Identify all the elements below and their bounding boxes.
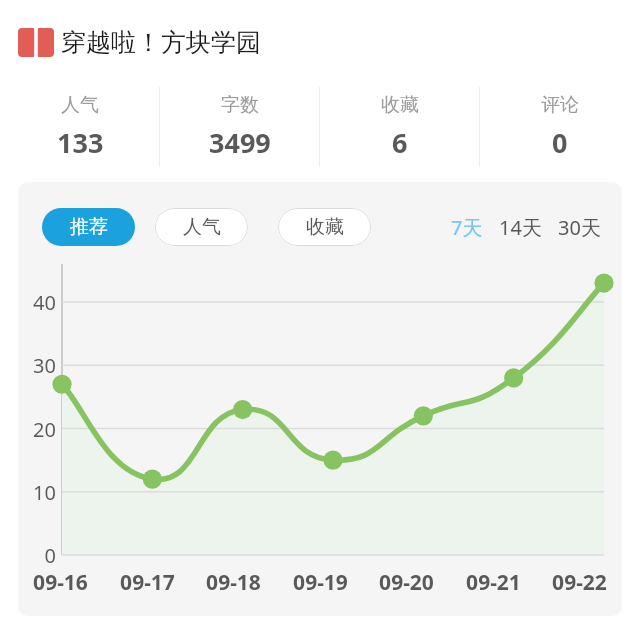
button[interactable]: 7天 bbox=[448, 209, 486, 246]
staticText: 09-17 bbox=[105, 568, 190, 597]
staticText: 人气 bbox=[61, 93, 99, 117]
staticText: 6 bbox=[392, 124, 408, 161]
staticText: 40 bbox=[20, 289, 56, 316]
staticText: 09-19 bbox=[278, 568, 363, 597]
button[interactable]: 收藏 bbox=[278, 208, 371, 246]
staticText: 20 bbox=[20, 416, 56, 443]
staticText: 14天 bbox=[499, 214, 542, 241]
staticText: 7天 bbox=[451, 214, 483, 241]
button[interactable]: 30天 bbox=[555, 209, 604, 246]
button[interactable]: 14天 bbox=[496, 209, 545, 246]
button[interactable]: 评论 bbox=[480, 84, 640, 170]
staticText: 穿越啦！方块学园 bbox=[61, 27, 261, 58]
staticText: 30天 bbox=[558, 214, 601, 241]
staticText: 133 bbox=[57, 124, 104, 161]
staticText: 字数 bbox=[221, 93, 259, 117]
staticText: 收藏 bbox=[306, 215, 344, 239]
staticText: 收藏 bbox=[381, 93, 419, 117]
staticText: 3499 bbox=[209, 124, 271, 161]
staticText: 0 bbox=[20, 542, 56, 569]
staticText: 09-20 bbox=[364, 568, 449, 597]
button[interactable]: 人气 bbox=[155, 208, 248, 246]
staticText: 评论 bbox=[541, 93, 579, 117]
staticText: 09-16 bbox=[18, 568, 103, 597]
staticText: 09-18 bbox=[191, 568, 276, 597]
staticText: 10 bbox=[20, 479, 56, 506]
other: Book bbox=[18, 28, 54, 57]
staticText: 0 bbox=[552, 124, 568, 161]
button[interactable]: 推荐 bbox=[42, 208, 135, 246]
button[interactable]: 收藏 bbox=[320, 84, 480, 170]
staticText: 30 bbox=[20, 352, 56, 379]
staticText: 人气 bbox=[183, 215, 221, 239]
staticText: 09-21 bbox=[451, 568, 536, 597]
button[interactable]: 人气 bbox=[0, 84, 160, 170]
staticText: 推荐 bbox=[70, 215, 108, 239]
button[interactable]: 字数 bbox=[160, 84, 320, 170]
staticText: 09-22 bbox=[537, 568, 622, 597]
